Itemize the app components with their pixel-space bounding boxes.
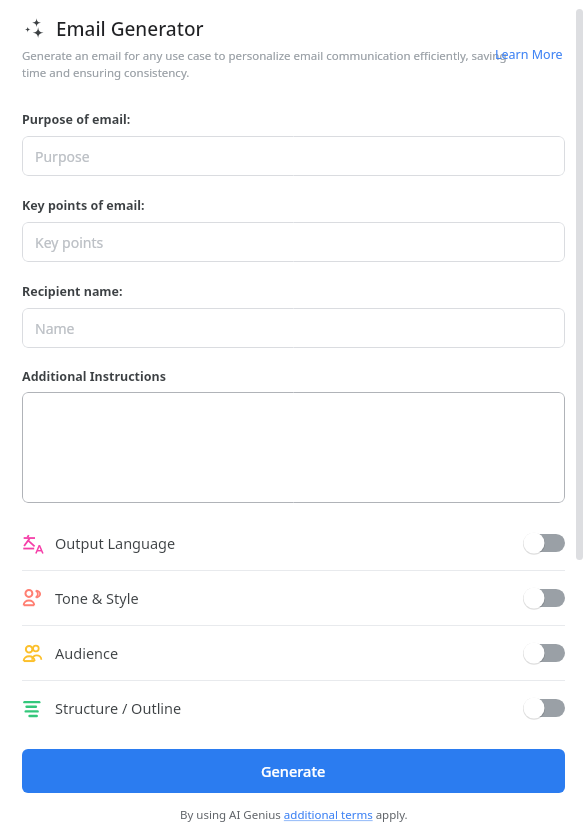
staticText: Recipient name: [22, 283, 123, 300]
staticText: Audience [55, 643, 119, 663]
button[interactable]: Generate [22, 749, 565, 793]
button[interactable]: Structure / Outline [0, 681, 587, 735]
staticText: Purpose of email: [22, 111, 131, 128]
button[interactable] [22, 392, 565, 503]
other: Toggle [523, 697, 565, 719]
staticText: Key points [35, 233, 104, 252]
staticText: Generate [261, 761, 326, 781]
staticText: Tone & Style [55, 588, 139, 608]
button[interactable]: Tone & Style [0, 571, 587, 625]
other: Toggle [523, 587, 565, 609]
staticText: Output Language [55, 533, 176, 553]
button[interactable]: Name [22, 308, 565, 348]
staticText: Email Generator [56, 16, 204, 42]
other: Toggle [523, 532, 565, 554]
button[interactable]: By using AI Genius additional terms appl… [180, 807, 408, 823]
button[interactable]: Key points [22, 222, 565, 262]
staticText: Purpose [35, 147, 90, 166]
other: Toggle [523, 642, 565, 664]
staticText: Generate an email for any use case to pe… [22, 48, 507, 80]
button[interactable]: Output Language [0, 516, 587, 570]
button[interactable]: Purpose [22, 136, 565, 176]
staticText: Name [35, 319, 75, 338]
staticText: Structure / Outline [55, 698, 182, 718]
staticText: Additional Instructions [22, 368, 166, 385]
staticText: Key points of email: [22, 197, 145, 214]
button[interactable]: Learn More [495, 46, 563, 63]
button[interactable]: Audience [0, 626, 587, 680]
